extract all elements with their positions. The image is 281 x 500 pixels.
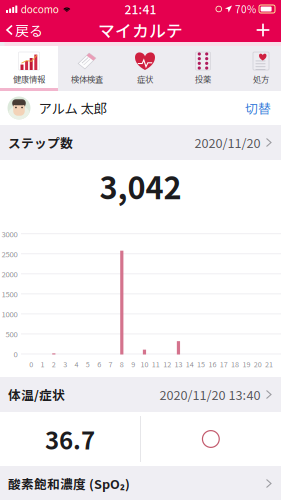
staticText: 10 bbox=[140, 359, 148, 369]
button[interactable]: 体温/症状 bbox=[0, 377, 281, 412]
staticText: 5 bbox=[86, 359, 90, 369]
staticText: 2 bbox=[52, 359, 56, 369]
staticText: 体温/症状 bbox=[8, 385, 65, 404]
staticText: 20 bbox=[254, 359, 262, 369]
staticText: 21 bbox=[265, 359, 273, 369]
button[interactable]: 健康情報 bbox=[0, 46, 58, 91]
staticText: 8 bbox=[120, 359, 124, 369]
staticText: docomo bbox=[21, 2, 59, 16]
staticText: 500 bbox=[5, 328, 17, 340]
button[interactable]: 戻る bbox=[0, 16, 50, 44]
staticText: 14 bbox=[186, 359, 194, 369]
staticText: 検体検査 bbox=[71, 73, 103, 85]
button[interactable]: ステップ数 bbox=[0, 125, 281, 160]
button[interactable]: 追加 bbox=[249, 18, 277, 42]
staticText: 2020/11/20 13:40 bbox=[159, 385, 260, 404]
staticText: 投薬 bbox=[195, 73, 211, 85]
staticText: 9 bbox=[131, 359, 135, 369]
staticText: 15 bbox=[197, 359, 205, 369]
staticText: 19 bbox=[242, 359, 250, 369]
staticText: 17 bbox=[220, 359, 228, 369]
staticText: 6 bbox=[97, 359, 101, 369]
staticText: 4 bbox=[74, 359, 78, 369]
staticText: 21:41 bbox=[124, 0, 156, 18]
staticText: 健康情報 bbox=[13, 73, 45, 85]
staticText: 13 bbox=[174, 359, 182, 369]
button[interactable]: 処方 bbox=[232, 46, 281, 91]
staticText: 7 bbox=[108, 359, 112, 369]
staticText: 酸素飽和濃度 (SpO₂) bbox=[8, 474, 130, 493]
staticText: 11 bbox=[152, 359, 160, 369]
staticText: 症状 bbox=[137, 73, 153, 85]
staticText: ステップ数 bbox=[8, 133, 73, 152]
staticText: 12 bbox=[163, 359, 171, 369]
staticText: 3 bbox=[63, 359, 67, 369]
staticText: 2500 bbox=[1, 248, 17, 259]
staticText: アルム 太郎 bbox=[38, 98, 106, 118]
staticText: 1500 bbox=[1, 288, 17, 299]
staticText: 18 bbox=[231, 359, 239, 369]
staticText: 切替 bbox=[245, 99, 271, 117]
staticText: 2000 bbox=[1, 268, 17, 279]
button[interactable]: アルム 太郎 bbox=[0, 91, 281, 125]
button[interactable]: 症状 bbox=[116, 46, 174, 91]
staticText: 3,042 bbox=[99, 164, 181, 208]
staticText: 2020/11/20 bbox=[194, 133, 260, 152]
button[interactable]: 検体検査 bbox=[58, 46, 116, 91]
button[interactable]: 酸素飽和濃度 (SpO₂) bbox=[0, 466, 281, 500]
staticText: 1 bbox=[40, 359, 44, 369]
staticText: マイカルテ bbox=[98, 18, 183, 42]
staticText: 16 bbox=[208, 359, 216, 369]
staticText: 1000 bbox=[1, 308, 17, 319]
staticText: 3000 bbox=[1, 228, 17, 239]
button[interactable]: 投薬 bbox=[174, 46, 232, 91]
staticText: 70% bbox=[235, 2, 256, 16]
staticText: 36.7 bbox=[45, 422, 95, 456]
staticText: 戻る bbox=[15, 20, 43, 40]
staticText: 0 bbox=[13, 348, 17, 360]
staticText: 処方 bbox=[253, 73, 269, 85]
staticText: 0 bbox=[29, 359, 33, 369]
